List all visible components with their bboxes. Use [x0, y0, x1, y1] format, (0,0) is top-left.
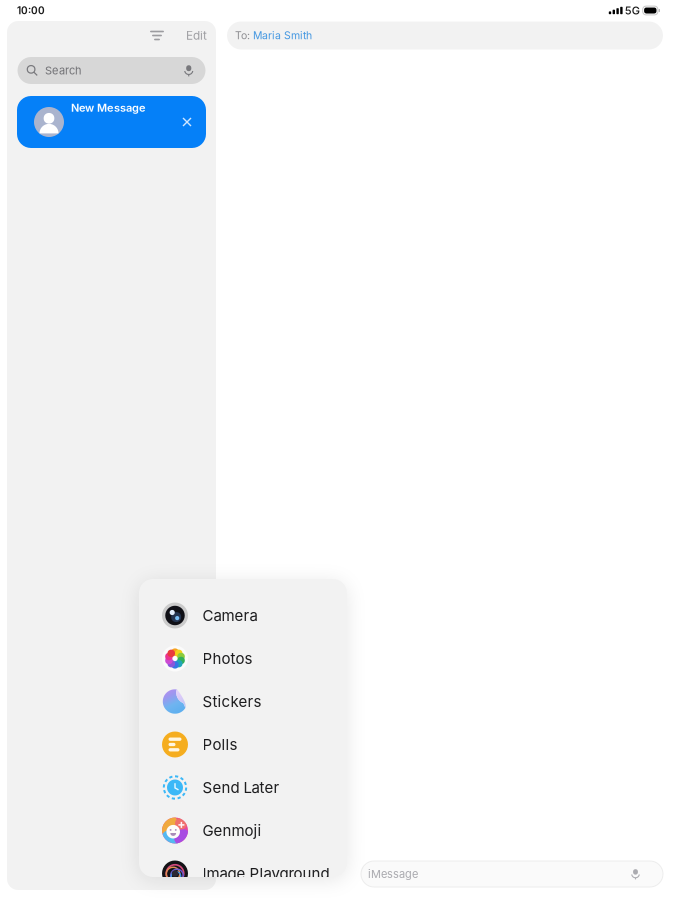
staticText: Image Playground [202, 864, 329, 882]
staticText: 5G [625, 4, 640, 17]
button[interactable]: Genmoji [139, 809, 347, 852]
button[interactable]: Camera [139, 594, 347, 637]
staticText: Stickers [202, 692, 261, 710]
staticText: Send Later [202, 778, 279, 796]
staticText: Camera [202, 606, 257, 624]
staticText: Edit [186, 28, 207, 43]
button[interactable]: Polls [139, 723, 347, 766]
button[interactable]: Stickers [139, 680, 347, 723]
staticText: 10:00 [17, 4, 45, 17]
staticText: Polls [202, 735, 237, 753]
button[interactable]: New Message [17, 96, 206, 148]
staticText: Genmoji [202, 821, 261, 839]
staticText: Maria Smith [253, 29, 312, 42]
staticText: Search [45, 64, 82, 77]
button[interactable]: Edit [169, 24, 209, 47]
staticText: New Message [71, 101, 146, 114]
staticText: Photos [202, 649, 252, 667]
button[interactable]: Send Later [139, 766, 347, 809]
button[interactable]: Filter [145, 25, 169, 46]
button[interactable]: Image Playground [139, 852, 347, 895]
staticText: To: [235, 29, 250, 42]
button[interactable]: Photos [139, 637, 347, 680]
staticText: iMessage [368, 867, 418, 881]
